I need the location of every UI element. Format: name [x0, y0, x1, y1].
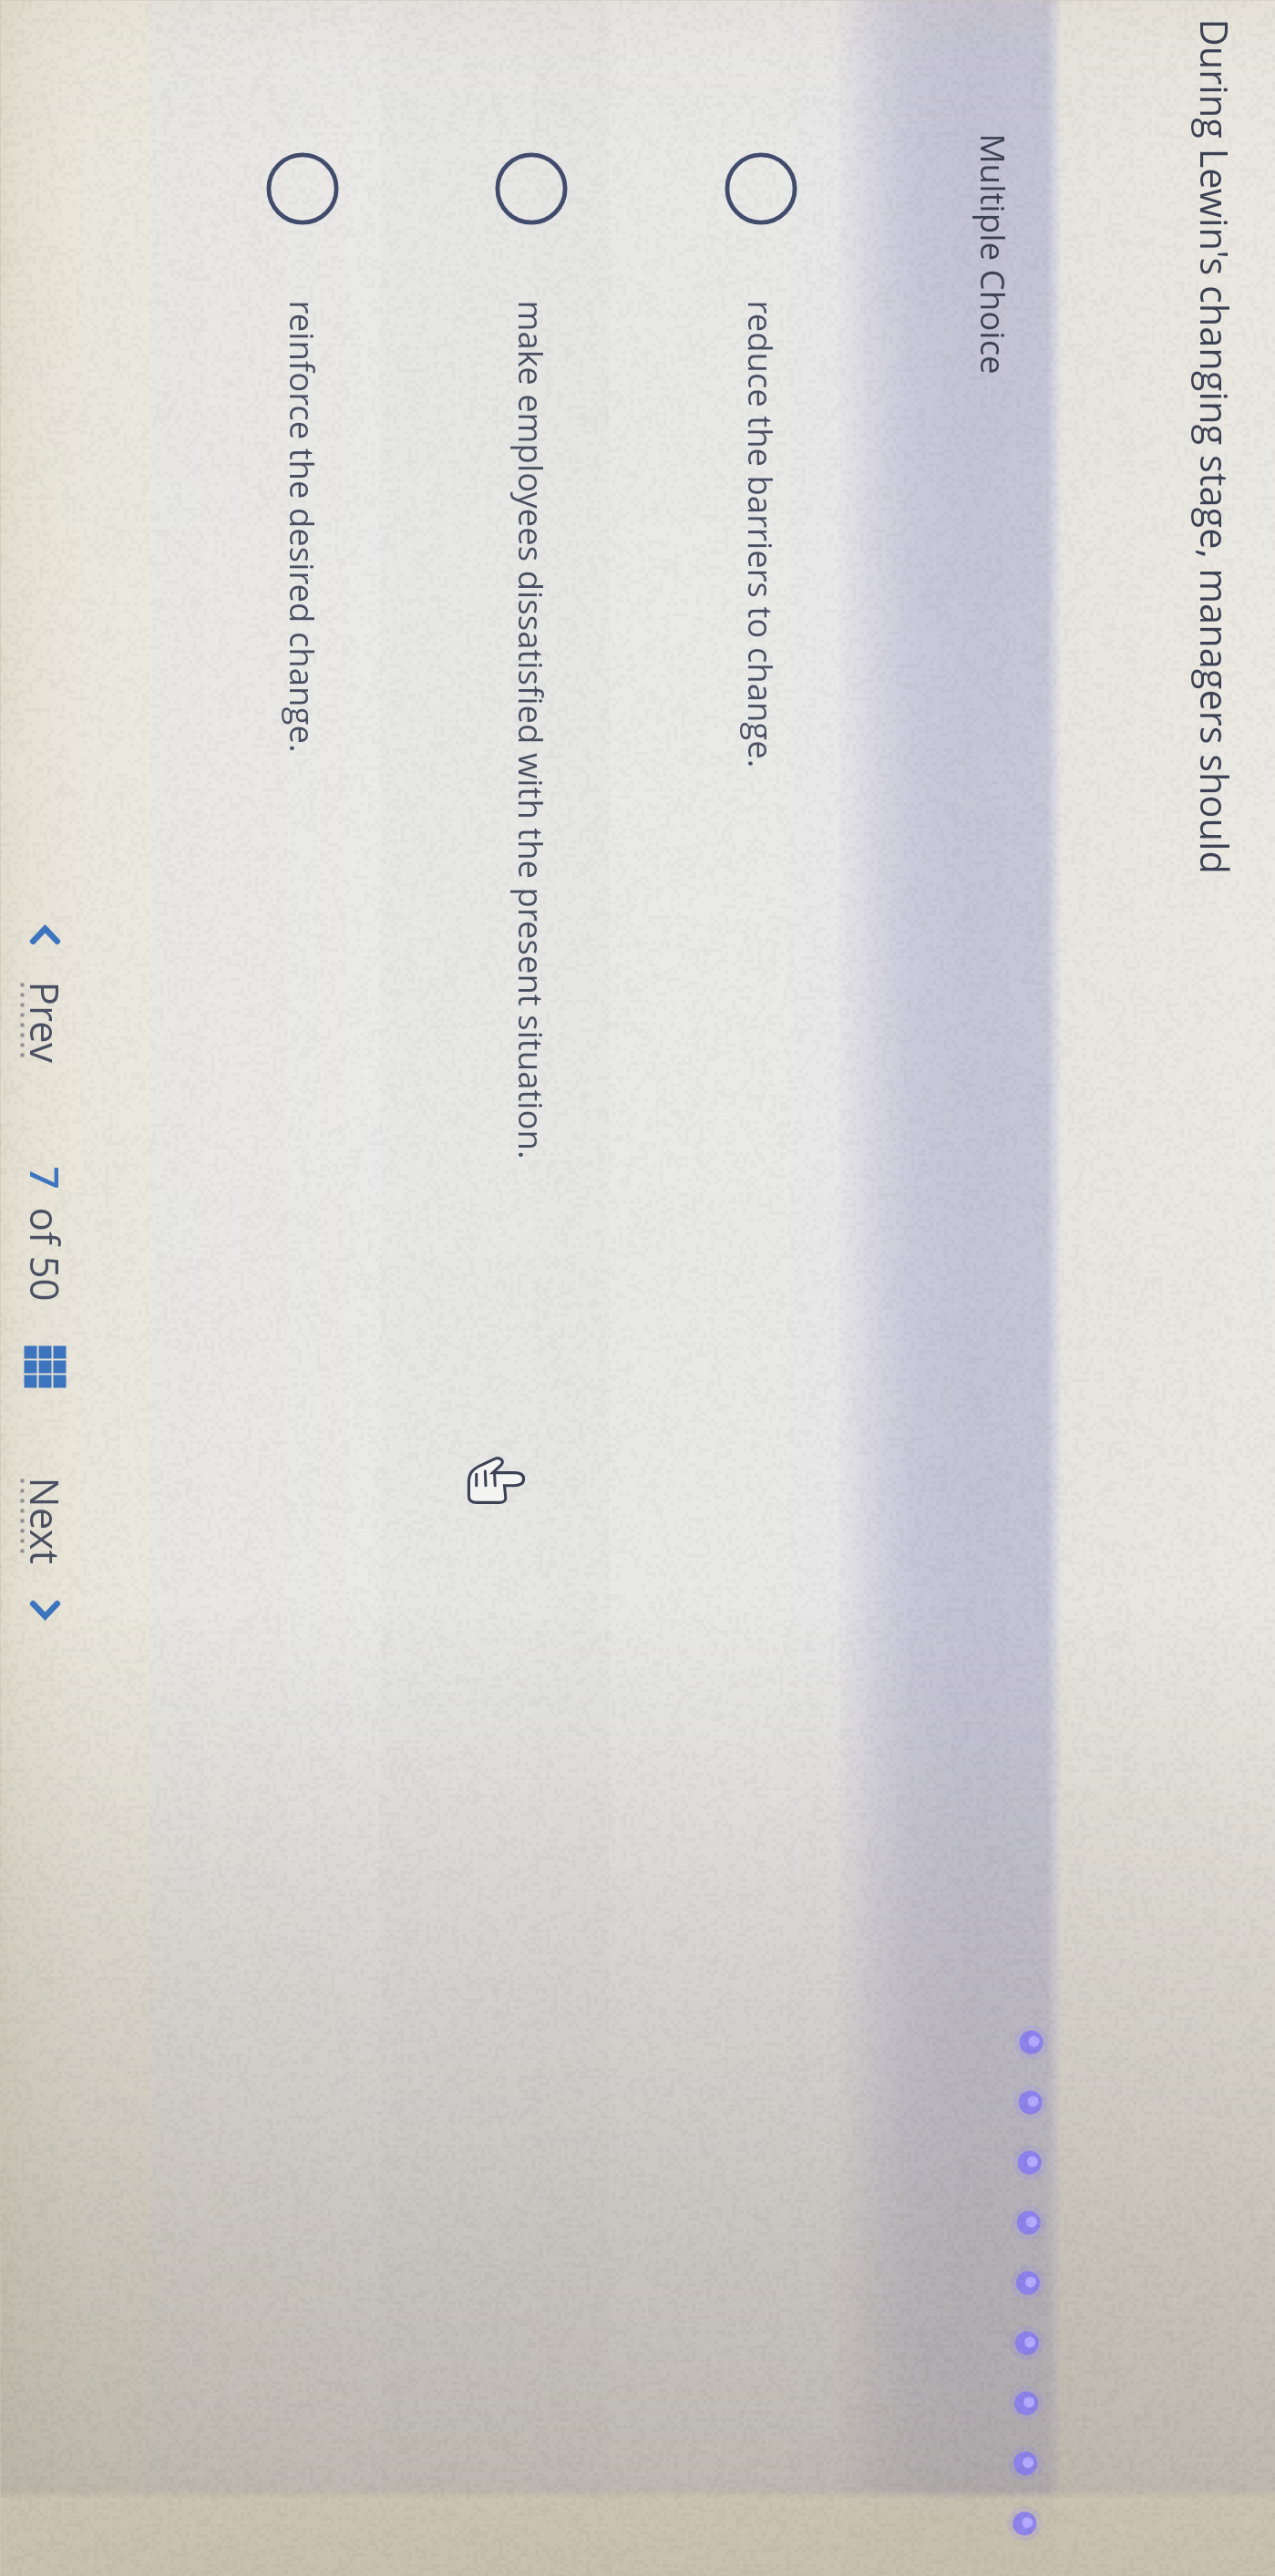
staticText: Prev: [18, 981, 72, 1063]
other: Previous question: [29, 924, 62, 946]
staticText: make employees dissatisfied with the pre…: [508, 300, 554, 1160]
staticText: reduce the barriers to change.: [738, 300, 783, 769]
staticText: Multiple Choice: [970, 134, 1016, 375]
staticText: During Lewin's changing stage, managers …: [1188, 19, 1240, 875]
button[interactable]: reduce the barriers to change.: [710, 119, 812, 2079]
button[interactable]: Next: [18, 1477, 72, 1621]
staticText: of 50: [18, 1207, 72, 1302]
other: Next question: [29, 1599, 62, 1621]
staticText: Next: [18, 1477, 72, 1565]
staticText: reinforce the desired change.: [279, 300, 325, 753]
button[interactable]: Previous question: [18, 924, 72, 1063]
button[interactable]: make employees dissatisfied with the pre…: [481, 119, 582, 2079]
button[interactable]: Question list: [24, 1346, 66, 1388]
staticText: 7: [18, 1166, 72, 1190]
button[interactable]: reinforce the desired change.: [252, 119, 353, 2079]
other: Pointer: [467, 1457, 525, 1504]
